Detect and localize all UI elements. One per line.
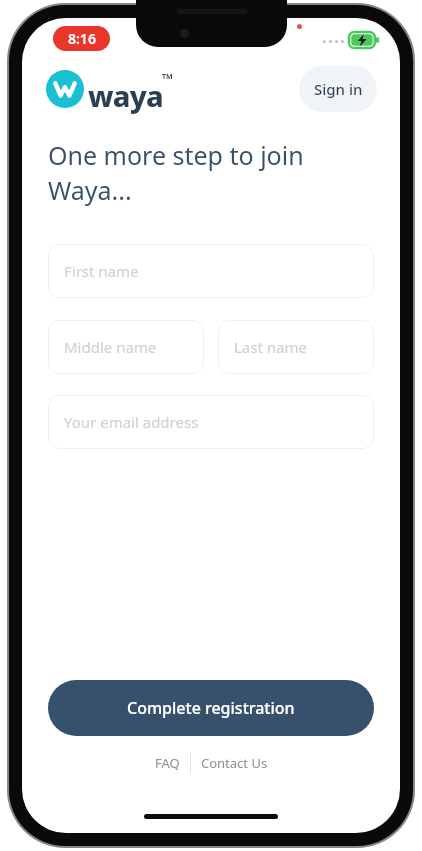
staticText: 8:16 bbox=[68, 29, 96, 48]
staticText: Sign in bbox=[314, 79, 363, 99]
button[interactable]: Middle name bbox=[48, 320, 204, 374]
staticText: Contact Us bbox=[201, 754, 268, 772]
staticText: First name bbox=[64, 261, 139, 281]
staticText: Your email address bbox=[64, 412, 199, 432]
staticText: Last name bbox=[234, 337, 307, 357]
staticText: Complete registration bbox=[127, 697, 295, 719]
button[interactable]: Last name bbox=[218, 320, 374, 374]
staticText: TM bbox=[162, 72, 173, 82]
staticText: Middle name bbox=[64, 337, 157, 357]
button[interactable]: Complete registration bbox=[48, 680, 374, 736]
button[interactable]: Contact Us bbox=[191, 750, 278, 776]
staticText: waya bbox=[88, 76, 163, 115]
staticText: FAQ bbox=[155, 754, 180, 772]
button[interactable]: First name bbox=[48, 244, 374, 298]
button[interactable]: FAQ bbox=[145, 750, 190, 776]
button[interactable]: Your email address bbox=[48, 395, 374, 449]
button[interactable]: Sign in bbox=[299, 66, 377, 112]
staticText: One more step to join Waya... bbox=[48, 138, 368, 208]
